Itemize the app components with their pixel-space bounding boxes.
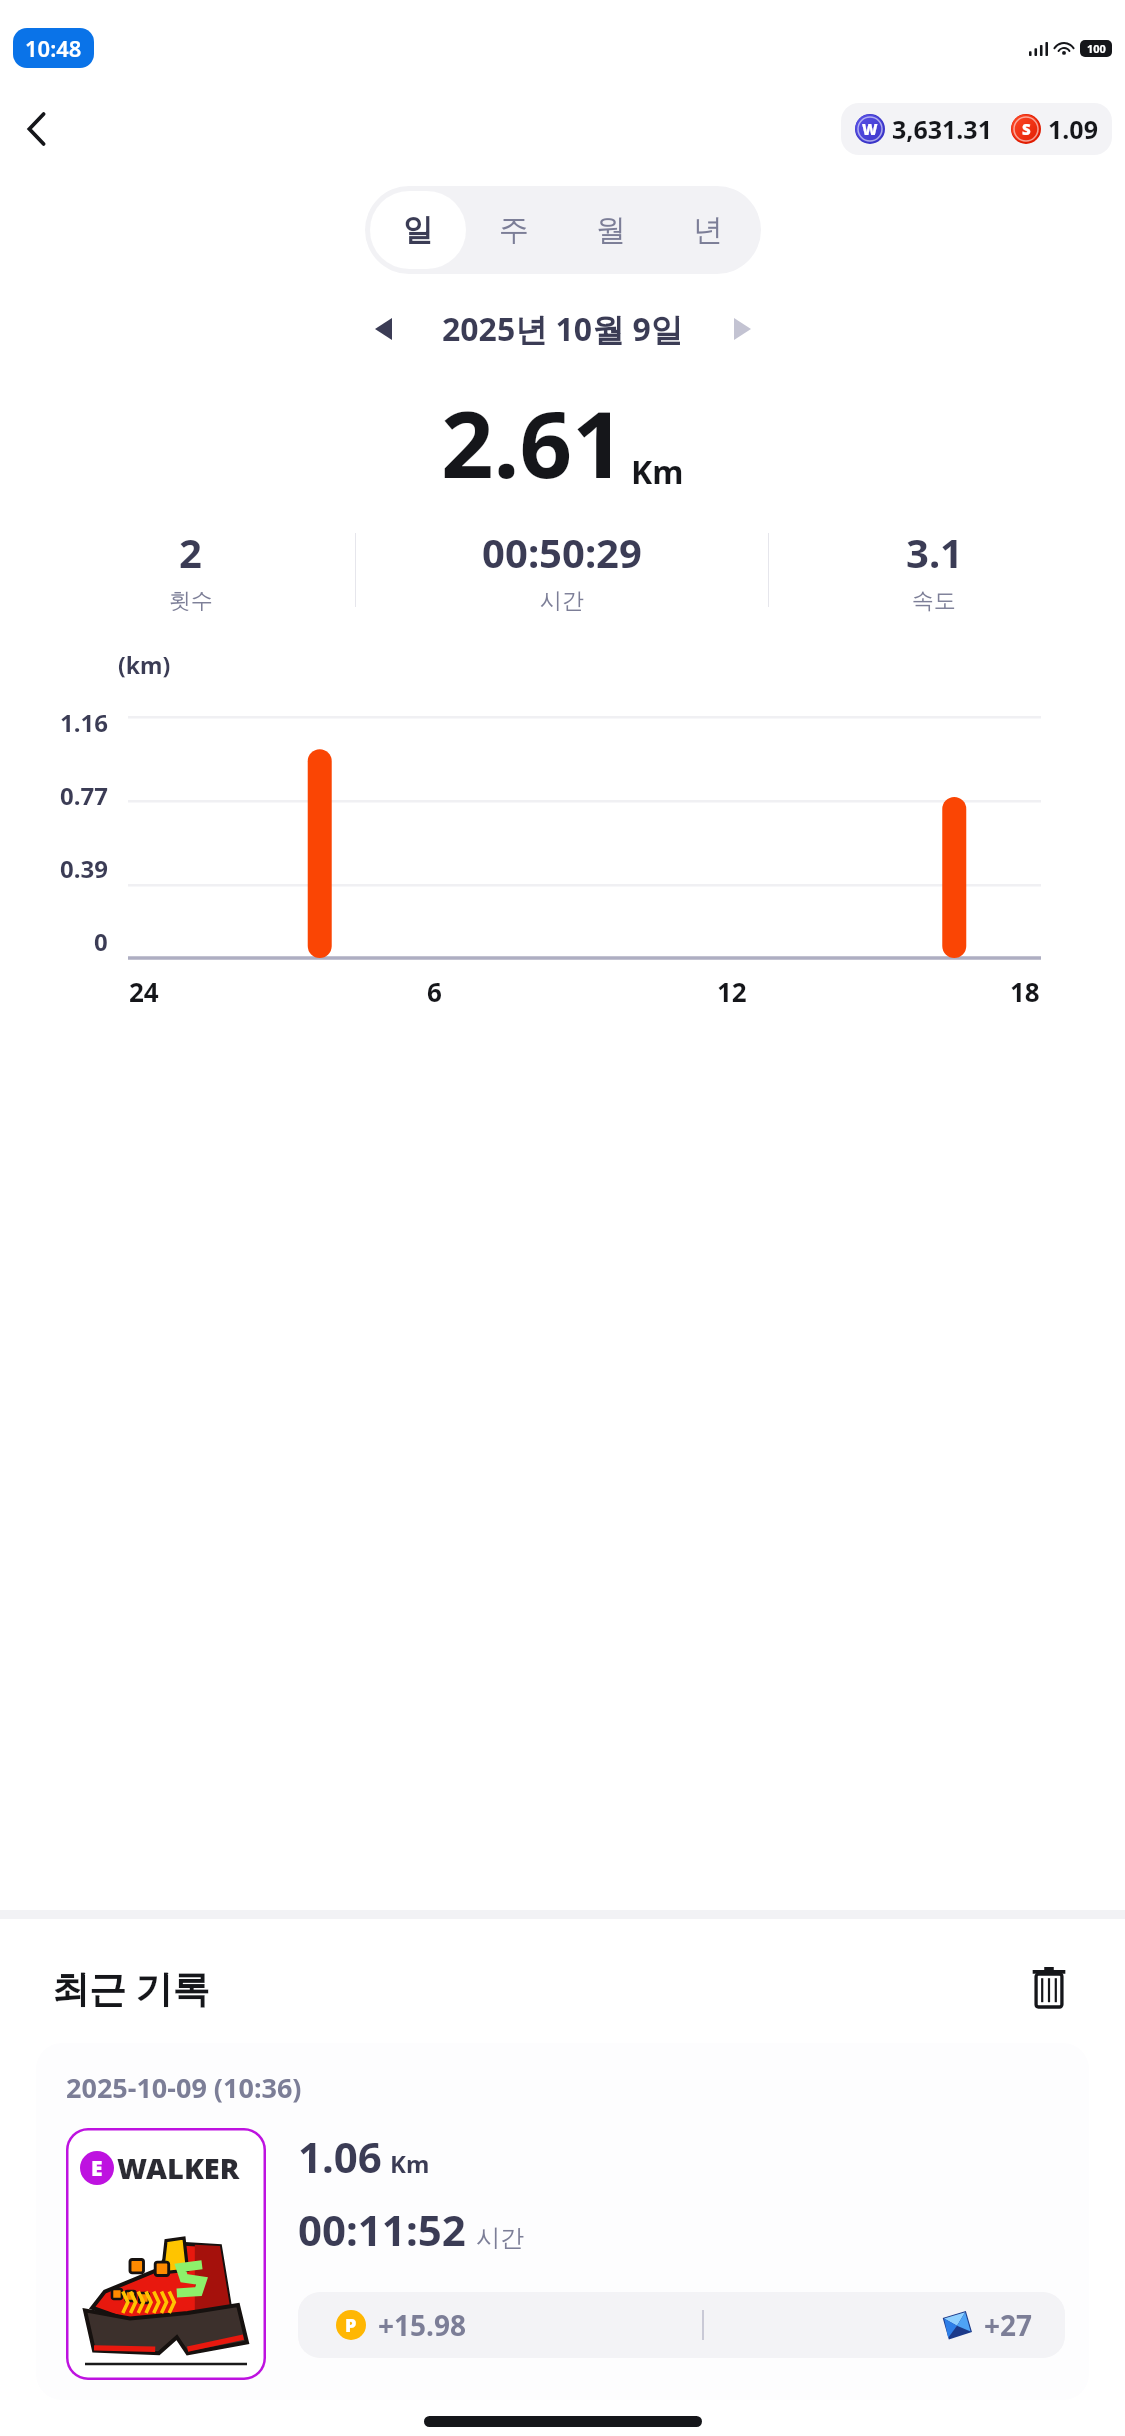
staticText: 100 [1087,41,1106,56]
staticText: 18 [1010,974,1040,1009]
staticText: P [345,2313,357,2338]
button[interactable]: P [298,2292,1065,2358]
staticText: 2025-10-09 (10:36) [66,2069,302,2106]
staticText: E [91,2154,103,2183]
staticText: 3,631.31 [892,112,992,146]
staticText: 최근 기록 [52,1962,210,2013]
staticText: 6 [427,974,442,1009]
staticText: 0 [94,925,108,958]
button[interactable]: Delete records [1019,1957,1079,2017]
staticText: 10:48 [25,33,82,63]
button[interactable]: Back [8,101,64,157]
staticText: 12 [717,974,747,1009]
staticText: WALKER [117,2148,240,2187]
button[interactable]: W [841,103,1112,155]
staticText: W [862,119,878,139]
staticText: 2.61 [441,380,625,505]
button[interactable]: Next day [715,302,769,356]
button[interactable]: 주 [466,191,562,269]
staticText: Km [390,2147,430,2180]
button[interactable]: 일 [370,191,466,269]
staticText: 00:50:29 [482,525,642,579]
staticText: 2025년 10월 9일 [442,307,683,351]
staticText: 3.1 [906,525,963,579]
staticText: (km) [118,649,171,680]
staticText: 00:11:52 [298,2201,466,2258]
button[interactable]: 2025-10-09 (10:36) [36,2043,1089,2400]
staticText: 0.39 [60,852,108,885]
staticText: 년 [693,211,723,249]
staticText: 1.16 [60,706,108,739]
staticText: 24 [129,974,159,1009]
button[interactable]: 년 [659,191,756,269]
staticText: 속도 [912,587,956,615]
staticText: 2 [179,525,202,579]
staticText: 시간 [540,587,584,615]
staticText: +15.98 [378,2306,466,2344]
staticText: 1.06 [298,2128,382,2185]
staticText: 일 [403,211,433,249]
staticText: S [1022,119,1031,139]
staticText: 0.77 [60,779,108,812]
staticText: 월 [596,211,626,249]
staticText: 시간 [476,2223,524,2253]
button[interactable]: Previous day [356,302,410,356]
staticText: 횟수 [169,587,213,615]
staticText: 1.09 [1048,112,1098,146]
staticText: Km [631,450,684,494]
staticText: 주 [499,211,529,249]
button[interactable]: 월 [562,191,659,269]
staticText: +27 [984,2306,1033,2344]
